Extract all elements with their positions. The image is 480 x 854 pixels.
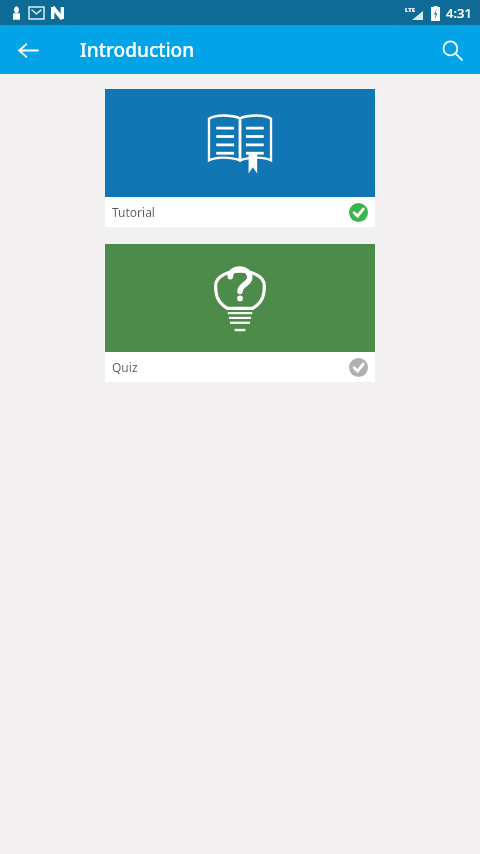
staticText: LTE: [405, 6, 416, 14]
staticText: 4:31: [446, 4, 472, 22]
button[interactable]: Quiz: [105, 244, 375, 382]
button[interactable]: Tutorial: [105, 89, 375, 227]
staticText: Tutorial: [112, 204, 155, 220]
button[interactable]: Search: [430, 28, 474, 72]
staticText: Quiz: [112, 359, 138, 375]
staticText: Introduction: [80, 37, 195, 63]
button[interactable]: Back: [8, 30, 48, 70]
